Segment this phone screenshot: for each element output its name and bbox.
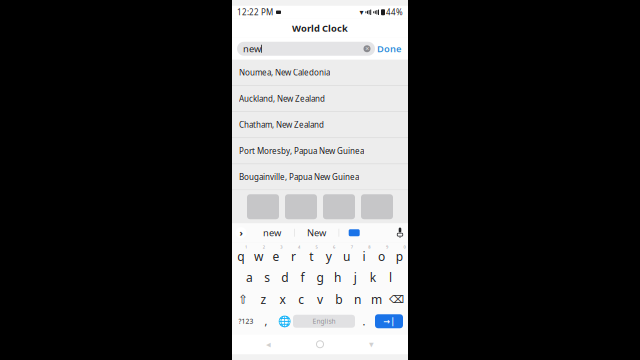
- staticText: a: [246, 269, 253, 285]
- staticText: d: [281, 269, 288, 285]
- staticText: ⇧: [238, 292, 248, 306]
- staticText: ◂: [266, 339, 271, 350]
- button[interactable]: x: [273, 288, 292, 310]
- staticText: g: [316, 269, 323, 285]
- button[interactable]: k: [364, 266, 382, 288]
- button[interactable]: 9: [373, 244, 390, 266]
- staticText: j: [354, 269, 357, 285]
- button[interactable]: z: [254, 288, 273, 310]
- staticText: l: [389, 269, 392, 285]
- button[interactable]: m: [367, 288, 386, 310]
- button[interactable]: Home: [305, 335, 335, 353]
- button[interactable]: Recent apps: [356, 335, 386, 353]
- staticText: o: [378, 248, 385, 264]
- staticText: ?123: [238, 317, 253, 326]
- button[interactable]: c: [292, 288, 311, 310]
- staticText: 1: [245, 244, 247, 249]
- staticText: t: [309, 248, 313, 264]
- staticText: 3: [280, 244, 282, 249]
- staticText: new: [263, 227, 281, 239]
- button[interactable]: v: [311, 288, 329, 310]
- button[interactable]: 6: [320, 244, 338, 266]
- button[interactable]: ,: [257, 310, 275, 332]
- staticText: q: [237, 248, 244, 264]
- button[interactable]: Voice input: [392, 226, 408, 240]
- button[interactable]: 0: [390, 244, 408, 266]
- staticText: m: [371, 291, 382, 307]
- button[interactable]: f: [294, 266, 311, 288]
- button[interactable]: s: [258, 266, 276, 288]
- staticText: 2: [263, 244, 265, 249]
- button[interactable]: 5: [302, 244, 320, 266]
- staticText: 7: [351, 244, 353, 249]
- button[interactable]: 3: [267, 244, 285, 266]
- button[interactable]: .: [355, 310, 373, 332]
- staticText: n: [354, 291, 361, 307]
- staticText: 4: [298, 244, 300, 249]
- staticText: ▾: [359, 8, 363, 17]
- button[interactable]: Bougainville, Papua New Guinea: [232, 164, 408, 190]
- staticText: Auckland, New Zealand: [239, 93, 325, 104]
- button[interactable]: Port Moresby, Papua New Guinea: [232, 138, 408, 164]
- button[interactable]: new: [250, 226, 294, 240]
- button[interactable]: Delete: [386, 288, 408, 310]
- button[interactable]: 4: [285, 244, 302, 266]
- button[interactable]: h: [329, 266, 346, 288]
- staticText: s: [264, 269, 270, 285]
- staticText: 44%: [386, 7, 403, 17]
- staticText: c: [298, 291, 304, 307]
- button[interactable]: New: [295, 226, 339, 240]
- button[interactable]: English: [293, 310, 355, 332]
- staticText: 12:22 PM: [237, 7, 273, 17]
- staticText: Noumea, New Caledonia: [239, 67, 330, 78]
- staticText: y: [326, 248, 332, 264]
- button[interactable]: Back: [253, 335, 283, 353]
- button[interactable]: Noumea, New Caledonia: [232, 60, 408, 86]
- button[interactable]: Chatham, New Zealand: [232, 112, 408, 138]
- button[interactable]: ?123: [235, 310, 257, 332]
- staticText: 8: [368, 244, 370, 249]
- staticText: ⌫: [389, 293, 404, 305]
- button[interactable]: 7: [338, 244, 355, 266]
- staticText: Done: [377, 43, 401, 55]
- button[interactable]: Shift: [232, 288, 254, 310]
- button[interactable]: b: [329, 288, 348, 310]
- staticText: w: [254, 248, 263, 264]
- staticText: x: [279, 291, 285, 307]
- staticText: Port Moresby, Papua New Guinea: [239, 145, 364, 156]
- button[interactable]: Done: [375, 42, 403, 56]
- button[interactable]: a: [241, 266, 258, 288]
- staticText: Chatham, New Zealand: [239, 119, 324, 130]
- staticText: .: [362, 314, 365, 328]
- staticText: ›: [239, 227, 242, 239]
- button[interactable]: n: [348, 288, 367, 310]
- staticText: →|: [383, 316, 394, 326]
- button[interactable]: Suggestion: [339, 226, 369, 240]
- button[interactable]: Change keyboard: [275, 310, 293, 332]
- button[interactable]: 1: [232, 244, 250, 266]
- button[interactable]: 8: [355, 244, 373, 266]
- button[interactable]: j: [346, 266, 364, 288]
- button[interactable]: Auckland, New Zealand: [232, 86, 408, 112]
- staticText: New: [307, 227, 326, 239]
- staticText: World Clock: [292, 22, 348, 34]
- button[interactable]: 2: [250, 244, 267, 266]
- staticText: 6: [333, 244, 335, 249]
- staticText: ,: [264, 314, 267, 328]
- staticText: Bougainville, Papua New Guinea: [239, 172, 359, 182]
- button[interactable]: g: [311, 266, 329, 288]
- staticText: i: [362, 248, 365, 264]
- staticText: ▾: [369, 339, 374, 350]
- button[interactable]: Enter: [373, 310, 405, 332]
- staticText: ✕: [365, 46, 369, 52]
- staticText: r: [291, 248, 296, 264]
- button[interactable]: Clear search: [361, 42, 373, 56]
- staticText: v: [317, 291, 323, 307]
- staticText: f: [300, 269, 304, 285]
- staticText: h: [334, 269, 341, 285]
- button[interactable]: d: [276, 266, 294, 288]
- button[interactable]: l: [382, 266, 399, 288]
- button[interactable]: Expand suggestions: [232, 226, 250, 240]
- staticText: e: [272, 248, 279, 264]
- staticText: z: [261, 291, 267, 307]
